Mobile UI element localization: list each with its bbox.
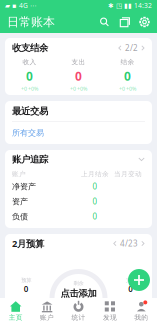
staticText: +0 +0% bbox=[21, 85, 38, 92]
staticText: 当月变动 bbox=[114, 170, 142, 178]
staticText: 我的 bbox=[134, 313, 148, 321]
staticText: 0 bbox=[26, 68, 33, 84]
staticText: 剩余 bbox=[73, 280, 83, 287]
button[interactable]: Ledgers bbox=[119, 16, 130, 27]
staticText: 2月预算 bbox=[12, 237, 44, 250]
staticText: 支出 bbox=[71, 58, 85, 66]
staticText: ✱ ◳ ▮▮ 14:32 bbox=[108, 1, 152, 10]
staticText: 支出 bbox=[126, 277, 136, 284]
button[interactable]: 发现 bbox=[94, 300, 126, 321]
staticText: 0 bbox=[92, 181, 97, 192]
staticText: 2/2 bbox=[125, 43, 138, 53]
button[interactable]: Next bbox=[141, 240, 145, 246]
button[interactable]: Search bbox=[99, 16, 110, 27]
button[interactable]: 统计 bbox=[63, 300, 94, 321]
button[interactable]: 负债 bbox=[12, 209, 145, 224]
staticText: 负债 bbox=[12, 212, 28, 221]
staticText: 0 bbox=[75, 68, 82, 84]
staticText: 0 bbox=[92, 196, 97, 207]
staticText: +0 +0% bbox=[70, 85, 87, 92]
staticText: ▰ ▪ 4G ⋯ bbox=[5, 1, 37, 10]
staticText: 账户 bbox=[40, 313, 54, 321]
staticText: 0 bbox=[24, 284, 29, 294]
staticText: 0 bbox=[124, 68, 131, 84]
staticText: 预算 bbox=[21, 277, 31, 284]
staticText: 所有交易 bbox=[12, 128, 44, 138]
staticText: +0 +0% bbox=[119, 85, 136, 92]
staticText: 最近交易 bbox=[12, 105, 48, 117]
button[interactable]: Settings bbox=[139, 16, 150, 27]
staticText: 4/23 bbox=[120, 238, 138, 249]
button[interactable]: 剩余 bbox=[60, 280, 96, 299]
staticText: 收支结余 bbox=[12, 42, 48, 54]
staticText: 发现 bbox=[103, 313, 117, 321]
staticText: 点击添加 bbox=[60, 288, 96, 299]
button[interactable]: Add transaction bbox=[128, 269, 150, 291]
staticText: 日常账本 bbox=[7, 15, 55, 29]
staticText: 0 bbox=[92, 211, 97, 222]
staticText: 账户 bbox=[12, 170, 26, 178]
button[interactable]: 资产 bbox=[12, 194, 145, 209]
staticText: 净资产 bbox=[12, 182, 36, 191]
staticText: 收入 bbox=[22, 58, 36, 66]
button[interactable]: 净资产 bbox=[12, 179, 145, 194]
button[interactable]: Previous bbox=[113, 240, 117, 246]
staticText: 0 bbox=[128, 284, 133, 294]
button[interactable]: 主页 bbox=[0, 300, 31, 321]
button[interactable]: 所有交易 bbox=[5, 122, 152, 144]
staticText: 资产 bbox=[12, 197, 28, 206]
staticText: 主页 bbox=[9, 313, 23, 321]
button[interactable]: Previous bbox=[118, 45, 122, 51]
staticText: 统计 bbox=[71, 313, 85, 321]
button[interactable]: 我的 bbox=[126, 300, 157, 321]
button[interactable]: Next bbox=[141, 45, 145, 51]
staticText: 上月结余 bbox=[81, 170, 109, 178]
staticText: 账户追踪 bbox=[12, 154, 48, 165]
staticText: 结余 bbox=[120, 58, 134, 66]
button[interactable]: Expand accounts bbox=[138, 157, 145, 162]
button[interactable]: 账户 bbox=[31, 300, 63, 321]
